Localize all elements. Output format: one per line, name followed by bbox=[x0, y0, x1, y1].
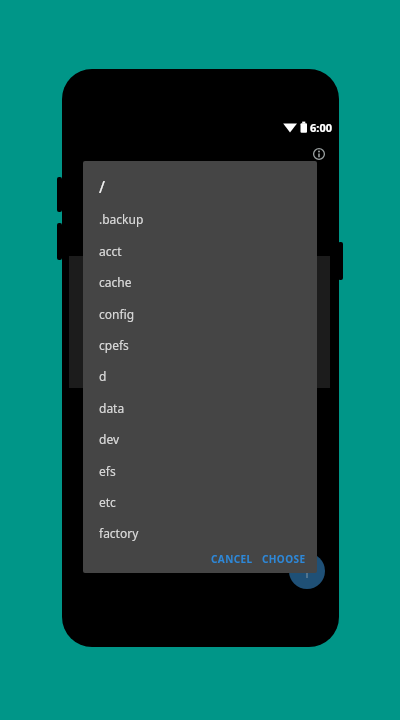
staticText: dev bbox=[99, 431, 120, 447]
staticText: CANCEL bbox=[211, 552, 253, 566]
staticText: / bbox=[99, 176, 105, 198]
staticText: acct bbox=[99, 243, 122, 259]
button[interactable]: config bbox=[83, 298, 317, 329]
staticText: config bbox=[99, 306, 135, 322]
button[interactable]: etc bbox=[83, 486, 317, 517]
staticText: cpefs bbox=[99, 337, 129, 353]
button[interactable]: CANCEL bbox=[201, 544, 262, 573]
staticText: factory bbox=[99, 525, 139, 541]
button[interactable]: cache bbox=[83, 266, 317, 297]
staticText: .backup bbox=[99, 211, 144, 227]
staticText: cache bbox=[99, 274, 132, 290]
button[interactable]: .backup bbox=[83, 203, 317, 234]
staticText: etc bbox=[99, 494, 116, 510]
staticText: d bbox=[99, 368, 107, 384]
staticText: efs bbox=[99, 463, 116, 479]
staticText: 6:00 bbox=[310, 120, 332, 135]
button[interactable]: dev bbox=[83, 423, 317, 454]
button[interactable] bbox=[289, 553, 325, 589]
button[interactable]: data bbox=[83, 392, 317, 423]
button[interactable] bbox=[307, 142, 331, 166]
staticText: CHOOSE bbox=[262, 552, 306, 566]
button[interactable]: d bbox=[83, 360, 317, 391]
button[interactable]: factory bbox=[83, 517, 317, 548]
button[interactable]: acct bbox=[83, 235, 317, 266]
button[interactable]: efs bbox=[83, 455, 317, 486]
button[interactable]: CHOOSE bbox=[253, 544, 314, 573]
staticText: data bbox=[99, 400, 125, 416]
button[interactable]: cpefs bbox=[83, 329, 317, 360]
